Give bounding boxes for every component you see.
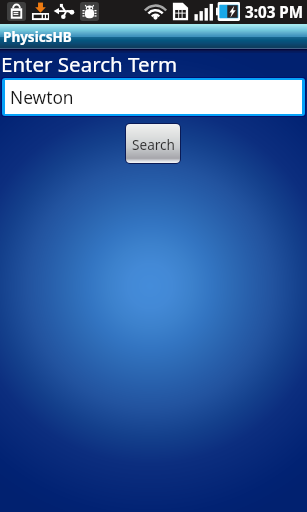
button[interactable]: Newton [5,80,302,114]
staticText: Newton [10,86,74,110]
staticText: PhysicsHB [3,28,72,46]
staticText: 3:03 PM [245,2,304,23]
staticText: Search [132,135,176,154]
staticText: Enter Search Term [1,50,178,78]
button[interactable]: Search [126,124,180,163]
